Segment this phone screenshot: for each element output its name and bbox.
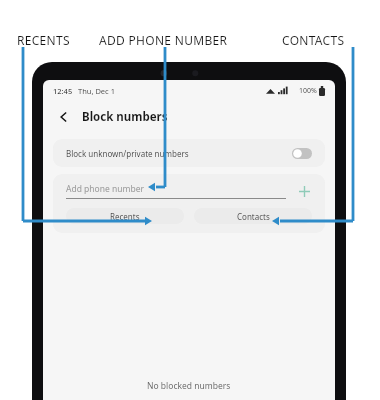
button[interactable]: Contacts xyxy=(194,208,312,224)
staticText: Thu, Dec 1 xyxy=(78,86,115,96)
staticText: Contacts xyxy=(237,211,270,222)
button[interactable]: Add xyxy=(296,183,312,199)
staticText: CONTACTS xyxy=(282,32,345,48)
staticText: 12:45 xyxy=(53,86,73,96)
button[interactable]: Recents xyxy=(66,208,184,224)
staticText: Recents xyxy=(110,211,140,222)
staticText: RECENTS xyxy=(17,32,70,48)
button[interactable]: Add phone number xyxy=(66,183,312,199)
staticText: Add phone number xyxy=(66,183,144,195)
staticText: Block unknown/private numbers xyxy=(66,148,189,159)
staticText: 100% xyxy=(299,86,317,96)
button[interactable]: Back xyxy=(53,106,75,128)
staticText: Block numbers xyxy=(82,109,168,125)
staticText: ADD PHONE NUMBER xyxy=(99,32,228,48)
button[interactable]: Block unknown/private numbers xyxy=(53,139,325,167)
staticText: No blocked numbers xyxy=(147,380,231,392)
